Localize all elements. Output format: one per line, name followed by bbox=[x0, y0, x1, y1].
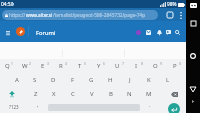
staticText: ?123 bbox=[9, 104, 19, 110]
button[interactable]: T bbox=[72, 59, 91, 73]
button[interactable]: Recent apps bbox=[188, 18, 198, 28]
button[interactable]: Tabs bbox=[164, 9, 176, 21]
button[interactable]: Q bbox=[0, 59, 18, 73]
button[interactable]: Home bbox=[188, 51, 198, 61]
staticText: D bbox=[51, 76, 56, 84]
button[interactable]: . bbox=[140, 101, 159, 113]
button[interactable]: M bbox=[139, 87, 158, 101]
staticText: M bbox=[146, 90, 152, 98]
staticText: , bbox=[37, 101, 39, 109]
staticText: B bbox=[109, 90, 113, 98]
button[interactable]: Chat bbox=[163, 27, 173, 37]
button[interactable]: J bbox=[120, 73, 139, 87]
staticText: J bbox=[129, 76, 131, 84]
button[interactable]: E bbox=[36, 59, 54, 73]
button[interactable]: Enter bbox=[168, 103, 180, 113]
staticText: U bbox=[115, 62, 120, 70]
staticText: 6 bbox=[103, 61, 105, 66]
button[interactable]: O bbox=[148, 59, 167, 73]
staticText: H bbox=[108, 76, 113, 84]
button[interactable]: H bbox=[101, 73, 120, 87]
button[interactable]: B bbox=[101, 87, 120, 101]
button[interactable]: Menu bbox=[2, 26, 14, 38]
button[interactable]: https:// bbox=[2, 10, 158, 20]
staticText: 3 bbox=[47, 61, 49, 66]
button[interactable]: Backspace bbox=[158, 87, 186, 101]
button[interactable]: Shift bbox=[0, 87, 27, 101]
staticText: 7 bbox=[122, 61, 124, 66]
staticText: https:// bbox=[9, 12, 26, 18]
staticText: L bbox=[166, 76, 170, 84]
staticText: Y bbox=[97, 62, 101, 70]
staticText: Z bbox=[34, 90, 38, 98]
button[interactable]: D bbox=[44, 73, 63, 87]
button[interactable]: Z bbox=[27, 87, 45, 101]
staticText: 9 bbox=[160, 61, 162, 66]
staticText: F bbox=[71, 76, 75, 84]
staticText: P bbox=[173, 62, 177, 70]
staticText: . bbox=[149, 101, 151, 109]
staticText: 8 bbox=[141, 61, 143, 66]
staticText: /temalist/peugeot-508-2845732/page-74p bbox=[53, 12, 146, 18]
staticText: 98% bbox=[167, 1, 177, 8]
button[interactable]: Y bbox=[91, 59, 110, 73]
staticText: 5 bbox=[84, 61, 86, 66]
button[interactable]: V bbox=[82, 87, 101, 101]
staticText: www.alter.si bbox=[26, 12, 53, 18]
staticText: T bbox=[78, 62, 82, 70]
button[interactable]: W bbox=[18, 59, 36, 73]
button[interactable]: P bbox=[167, 59, 186, 73]
button[interactable]: I bbox=[129, 59, 148, 73]
button[interactable]: Site logo bbox=[16, 27, 25, 36]
button[interactable]: K bbox=[139, 73, 158, 87]
button[interactable]: Notifications bbox=[154, 27, 164, 37]
button[interactable]: More options bbox=[175, 9, 187, 21]
staticText: R bbox=[59, 62, 63, 70]
button[interactable]: Back bbox=[188, 84, 198, 94]
staticText: W bbox=[22, 62, 28, 70]
button[interactable]: Messages bbox=[143, 27, 153, 37]
button[interactable]: F bbox=[63, 73, 82, 87]
button[interactable]: G bbox=[82, 73, 101, 87]
staticText: Forumi bbox=[36, 29, 56, 37]
button[interactable]: A bbox=[8, 73, 26, 87]
staticText: V bbox=[90, 90, 94, 98]
staticText: S bbox=[33, 76, 37, 84]
staticText: 0 bbox=[179, 61, 181, 66]
staticText: I bbox=[135, 62, 138, 70]
button[interactable]: C bbox=[63, 87, 82, 101]
button[interactable]: X bbox=[45, 87, 63, 101]
button[interactable]: N bbox=[120, 87, 139, 101]
staticText: 1 bbox=[11, 61, 13, 66]
button[interactable]: , bbox=[28, 101, 47, 113]
staticText: G bbox=[89, 76, 94, 84]
staticText: 2 bbox=[29, 61, 31, 66]
staticText: 4 bbox=[65, 61, 67, 66]
button[interactable]: L bbox=[158, 73, 177, 87]
staticText: O bbox=[153, 62, 158, 70]
button[interactable]: Search bbox=[172, 27, 182, 37]
button[interactable]: R bbox=[54, 59, 72, 73]
staticText: E bbox=[41, 62, 45, 70]
staticText: A bbox=[15, 76, 19, 84]
staticText: Q bbox=[5, 62, 10, 70]
button[interactable]: U bbox=[110, 59, 129, 73]
button[interactable]: S bbox=[26, 73, 44, 87]
staticText: 04:53 bbox=[1, 1, 14, 8]
button[interactable]: ?123 bbox=[0, 101, 28, 113]
staticText: X bbox=[52, 90, 56, 98]
staticText: N bbox=[127, 90, 132, 98]
button[interactable]: Account bbox=[133, 27, 143, 37]
staticText: C bbox=[71, 90, 75, 98]
staticText: K bbox=[147, 76, 151, 84]
